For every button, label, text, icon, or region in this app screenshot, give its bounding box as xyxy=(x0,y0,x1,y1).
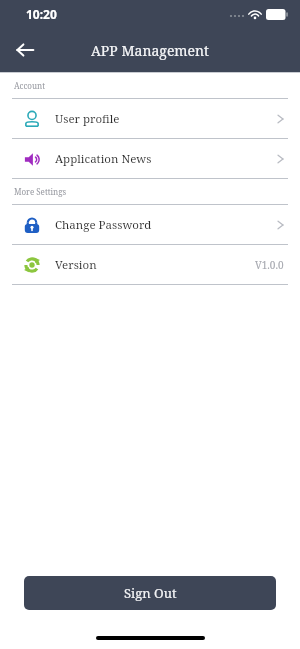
staticText: Version xyxy=(55,257,97,273)
staticText: More Settings xyxy=(14,186,67,197)
staticText: Sign Out xyxy=(124,584,177,602)
button[interactable]: Back xyxy=(10,35,40,65)
staticText: APP Management xyxy=(91,41,210,60)
button[interactable]: Change Password xyxy=(0,205,300,244)
button[interactable]: Version xyxy=(0,245,300,284)
button[interactable]: Application News xyxy=(0,139,300,178)
staticText: 10:20 xyxy=(26,6,57,22)
staticText: Application News xyxy=(55,151,152,167)
button[interactable]: Sign Out xyxy=(24,576,276,610)
staticText: User profile xyxy=(55,111,120,127)
staticText: Account xyxy=(14,80,46,91)
button[interactable]: User profile xyxy=(0,99,300,138)
staticText: V1.0.0 xyxy=(255,258,284,272)
staticText: Change Password xyxy=(55,217,152,233)
